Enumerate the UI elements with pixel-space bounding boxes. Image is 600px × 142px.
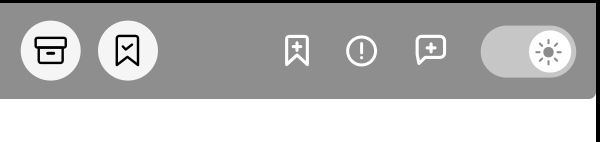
button[interactable]: Add bookmark (277, 27, 317, 74)
button[interactable]: Brightness (481, 26, 576, 78)
button[interactable]: Saved (98, 21, 158, 81)
button[interactable]: Archive (21, 21, 81, 81)
button[interactable]: Report issue (338, 27, 385, 74)
button[interactable]: New message (408, 27, 454, 73)
